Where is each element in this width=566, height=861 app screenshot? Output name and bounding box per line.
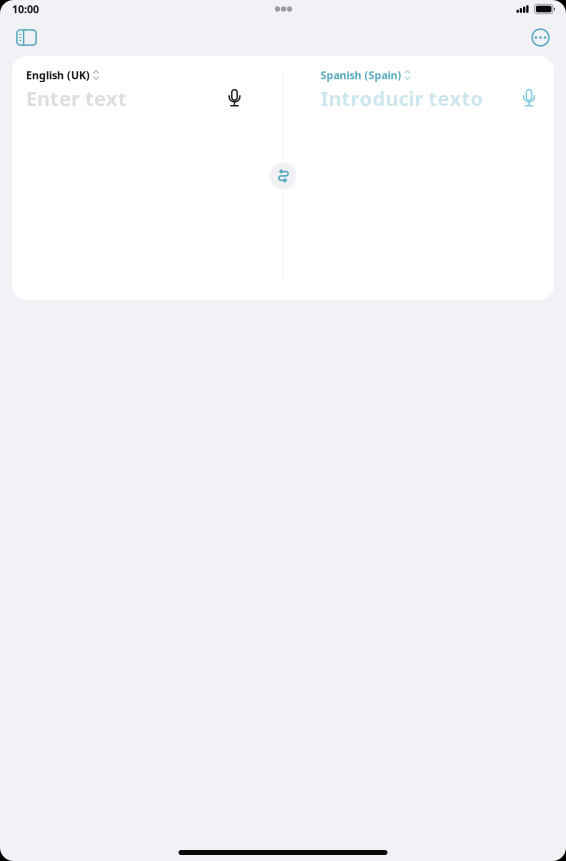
staticText: Spanish (Spain) <box>320 68 401 82</box>
button[interactable]: Spanish (Spain) <box>320 69 544 81</box>
button[interactable]: Swap languages <box>268 162 297 189</box>
staticText: 10:00 <box>12 2 39 16</box>
button[interactable]: More <box>524 23 557 51</box>
button[interactable]: English (UK) <box>26 69 249 81</box>
button[interactable]: Dictate <box>514 85 544 111</box>
staticText: English (UK) <box>26 68 90 82</box>
button[interactable]: Dictate <box>219 85 249 111</box>
staticText: Enter text <box>26 85 127 112</box>
staticText: Introducir texto <box>320 85 483 112</box>
button[interactable]: Show Sidebar <box>9 23 44 51</box>
